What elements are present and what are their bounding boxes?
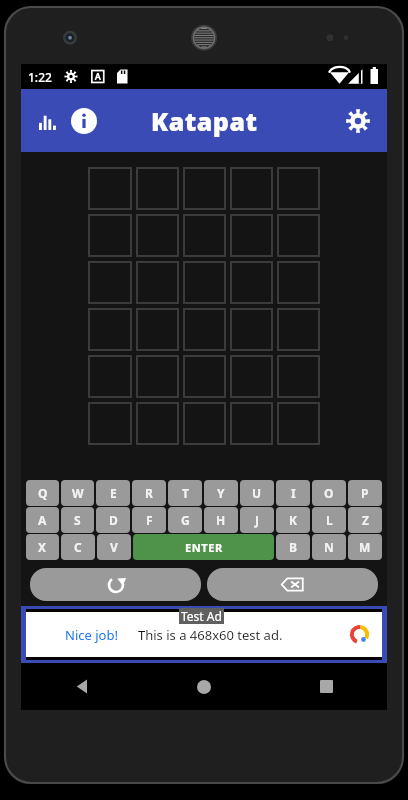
button[interactable] — [136, 402, 179, 445]
staticText: ENTER — [185, 540, 223, 555]
staticText: N — [324, 539, 334, 555]
button[interactable] — [183, 402, 226, 445]
button[interactable] — [183, 308, 226, 351]
staticText: C — [74, 539, 82, 555]
button[interactable]: Restart — [30, 568, 201, 601]
staticText: A — [38, 512, 47, 528]
button[interactable]: F — [132, 507, 166, 533]
staticText: This is a 468x60 test ad. — [138, 626, 283, 644]
staticText: Katapat — [151, 104, 258, 138]
button[interactable]: Advertisement — [26, 612, 382, 657]
button[interactable]: X — [26, 534, 59, 560]
button[interactable]: Home — [143, 663, 265, 710]
button[interactable]: I — [276, 480, 310, 506]
staticText: M — [359, 539, 371, 555]
staticText: F — [146, 512, 153, 528]
button[interactable]: O — [312, 480, 346, 506]
button[interactable] — [88, 261, 132, 304]
button[interactable] — [277, 261, 320, 304]
button[interactable]: R — [132, 480, 166, 506]
button[interactable]: Back — [21, 663, 143, 710]
button[interactable] — [183, 214, 226, 257]
button[interactable]: G — [168, 507, 202, 533]
button[interactable] — [88, 402, 132, 445]
button[interactable]: J — [240, 507, 274, 533]
button[interactable]: Settings — [339, 102, 377, 140]
button[interactable] — [230, 355, 273, 398]
button[interactable] — [136, 261, 179, 304]
staticText: Y — [217, 485, 225, 501]
staticText: K — [289, 512, 297, 528]
button[interactable]: P — [348, 480, 382, 506]
button[interactable]: B — [276, 534, 310, 560]
button[interactable]: Info — [67, 104, 101, 138]
staticText: D — [109, 512, 118, 528]
button[interactable] — [277, 167, 320, 210]
button[interactable]: Backspace — [207, 568, 378, 601]
button[interactable] — [136, 167, 179, 210]
button[interactable] — [230, 261, 273, 304]
button[interactable]: ENTER — [133, 534, 274, 560]
staticText: 1:22 — [28, 69, 52, 85]
button[interactable] — [230, 402, 273, 445]
staticText: V — [110, 539, 118, 555]
button[interactable]: E — [96, 480, 130, 506]
staticText: T — [182, 485, 189, 501]
staticText: P — [361, 485, 369, 501]
button[interactable] — [183, 355, 226, 398]
button[interactable] — [183, 167, 226, 210]
button[interactable] — [136, 355, 179, 398]
staticText: B — [289, 539, 297, 555]
staticText: J — [255, 512, 259, 528]
button[interactable] — [230, 167, 273, 210]
button[interactable]: C — [61, 534, 95, 560]
button[interactable] — [277, 402, 320, 445]
button[interactable]: N — [312, 534, 346, 560]
staticText: R — [145, 485, 153, 501]
button[interactable]: Q — [26, 480, 59, 506]
button[interactable]: U — [240, 480, 274, 506]
staticText: H — [216, 512, 226, 528]
button[interactable] — [277, 308, 320, 351]
button[interactable]: D — [96, 507, 130, 533]
button[interactable]: K — [276, 507, 310, 533]
staticText: G — [181, 512, 190, 528]
button[interactable] — [230, 308, 273, 351]
button[interactable]: H — [204, 507, 238, 533]
button[interactable]: Recent apps — [265, 663, 387, 710]
button[interactable]: A — [26, 507, 59, 533]
staticText: S — [74, 512, 81, 528]
button[interactable]: Z — [348, 507, 382, 533]
button[interactable] — [88, 167, 132, 210]
button[interactable]: S — [61, 507, 94, 533]
button[interactable]: Statistics — [32, 106, 62, 136]
staticText: Z — [362, 512, 369, 528]
staticText: I — [291, 485, 296, 501]
button[interactable]: W — [61, 480, 94, 506]
staticText: E — [110, 485, 117, 501]
staticText: X — [38, 539, 47, 555]
button[interactable]: T — [168, 480, 202, 506]
button[interactable] — [136, 308, 179, 351]
button[interactable]: L — [312, 507, 346, 533]
staticText: U — [252, 485, 262, 501]
staticText: L — [326, 512, 333, 528]
staticText: O — [324, 485, 334, 501]
button[interactable] — [277, 355, 320, 398]
staticText: Nice job! — [65, 626, 118, 644]
staticText: Q — [38, 485, 48, 501]
button[interactable]: M — [348, 534, 382, 560]
button[interactable] — [183, 261, 226, 304]
button[interactable]: Y — [204, 480, 238, 506]
button[interactable] — [88, 308, 132, 351]
button[interactable] — [88, 214, 132, 257]
staticText: Test Ad — [181, 608, 222, 624]
button[interactable] — [88, 355, 132, 398]
button[interactable] — [277, 214, 320, 257]
button[interactable]: V — [97, 534, 131, 560]
button[interactable] — [230, 214, 273, 257]
staticText: W — [72, 485, 84, 501]
button[interactable] — [136, 214, 179, 257]
